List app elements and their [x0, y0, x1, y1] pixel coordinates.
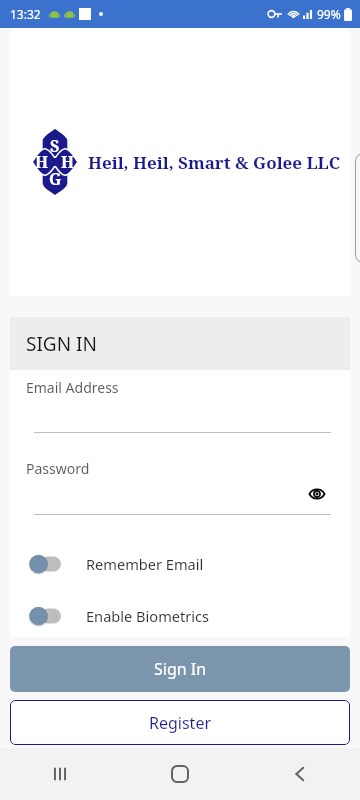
staticText: Password [26, 459, 90, 478]
staticText: S [50, 135, 60, 157]
staticText: Heil, Heil, Smart & Golee LLC [88, 151, 341, 174]
staticText: H [35, 151, 49, 173]
staticText: Sign In [154, 658, 207, 680]
staticText: 13:32 [10, 6, 41, 22]
button[interactable]: Home [120, 748, 240, 800]
staticText: 99% [317, 6, 341, 22]
staticText: Enable Biometrics [86, 606, 210, 626]
staticText: SIGN IN [26, 331, 97, 357]
button[interactable]: Show password [305, 482, 329, 506]
button[interactable]: Register [10, 700, 350, 745]
staticText: H [61, 151, 75, 173]
button[interactable]: Recent apps [0, 748, 120, 800]
button[interactable]: Remember Email [10, 546, 350, 582]
staticText: G [49, 168, 62, 190]
button[interactable]: Sign In [10, 646, 350, 692]
staticText: Register [149, 712, 212, 734]
staticText: Remember Email [86, 554, 204, 574]
staticText: Email Address [26, 378, 119, 397]
button[interactable]: Back [240, 748, 360, 800]
button[interactable]: Enable Biometrics [10, 598, 350, 634]
